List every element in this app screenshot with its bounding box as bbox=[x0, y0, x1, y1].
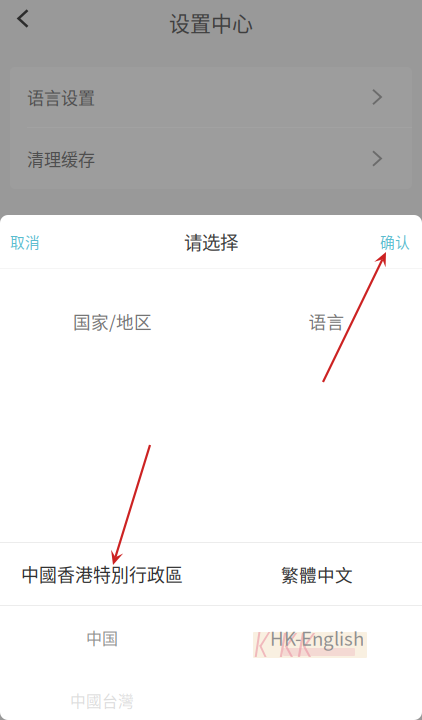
staticText: 中國香港特別行政區 bbox=[21, 561, 183, 587]
staticText: 语言设置 bbox=[27, 85, 95, 109]
staticText: 取消 bbox=[10, 231, 40, 252]
staticText: 清理缓存 bbox=[27, 146, 95, 171]
button[interactable]: 清理缓存 bbox=[10, 128, 412, 189]
staticText: 确认 bbox=[380, 231, 410, 252]
staticText: 国家/地区 bbox=[73, 308, 152, 334]
button[interactable]: 确认 bbox=[366, 215, 422, 268]
button[interactable]: Back bbox=[0, 0, 45, 44]
staticText: HK-English bbox=[270, 624, 364, 651]
staticText: 语言 bbox=[308, 308, 344, 334]
staticText: 繁體中文 bbox=[281, 561, 353, 587]
staticText: 请选择 bbox=[184, 228, 238, 255]
button[interactable]: 取消 bbox=[0, 215, 54, 268]
staticText: 中國台灣 bbox=[70, 689, 134, 712]
staticText: 中国 bbox=[86, 626, 118, 649]
staticText: 设置中心 bbox=[169, 7, 253, 37]
button[interactable]: 语言设置 bbox=[10, 67, 412, 127]
